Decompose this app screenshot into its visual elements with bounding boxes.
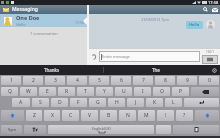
staticText: The [152,67,160,73]
button[interactable]: Send [202,55,218,64]
staticText: H [115,99,119,106]
button[interactable]: Sym [1,125,22,134]
staticText: G [96,99,100,106]
button[interactable]: H [108,98,125,107]
button[interactable]: Clipboard [173,125,219,134]
staticText: 2 [32,77,35,84]
button[interactable]: O [153,87,170,96]
button[interactable]: The [104,65,208,75]
staticText: C [69,112,73,119]
button[interactable]: Z [26,110,42,121]
staticText: Sym [8,127,16,132]
button[interactable]: 9 [177,76,197,85]
button[interactable]: S [32,98,49,107]
button[interactable]: Search [202,6,209,13]
button[interactable]: Attach [90,53,98,61]
button[interactable]: R [58,87,75,96]
button[interactable]: ? [176,110,193,121]
staticText: A [19,99,23,106]
button[interactable]: One Doe [0,14,87,27]
button[interactable]: A [12,98,30,107]
button[interactable]: U [115,87,132,96]
button[interactable]: W [20,87,37,96]
staticText: Hello [189,22,200,28]
button[interactable]: Keyboard settings [208,65,220,75]
staticText: 0 [208,77,211,84]
button[interactable]: T [77,87,94,96]
button[interactable]: 2 [23,76,43,85]
staticText: K [153,99,157,106]
staticText: One Doe [16,14,40,21]
button[interactable]: I [134,87,151,96]
staticText: Thanks [44,67,60,73]
staticText: 7 [142,77,145,84]
button[interactable]: Q [1,87,18,96]
button[interactable]: J [127,98,144,107]
button[interactable]: F [70,98,87,107]
staticText: F [77,99,80,106]
staticText: B [107,112,111,119]
staticText: Y [103,88,106,95]
staticText: 3 [54,77,57,84]
button[interactable]: New message [211,6,218,13]
staticText: W [26,88,31,95]
button[interactable]: 5 [89,76,109,85]
button[interactable]: M [138,110,155,121]
staticText: M [144,112,149,119]
staticText: 160/1 [206,50,214,54]
button[interactable]: 7 [133,76,153,85]
button[interactable]: 4 [67,76,87,85]
staticText: U [122,88,126,95]
button[interactable]: N [119,110,136,121]
button[interactable]: Emoji [156,125,171,134]
staticText: D [58,99,62,106]
button[interactable]: X [44,110,60,121]
staticText: V [88,112,92,119]
staticText: 4 [76,77,79,84]
button[interactable]: C [62,110,79,121]
button[interactable]: 6 [111,76,131,85]
staticText: English(UK) [92,126,111,131]
button[interactable]: 3 [45,76,65,85]
staticText: R [65,88,69,95]
button[interactable]: Y [96,87,113,96]
button[interactable]: B [100,110,117,121]
staticText: I [142,88,144,95]
staticText: Hello [16,22,26,27]
staticText: 1 [10,77,13,84]
button[interactable]: Voice input [24,125,46,134]
button[interactable]: E [39,87,56,96]
staticText: 9 [186,77,189,84]
staticText: Messaging [12,6,38,13]
staticText: E [46,88,49,95]
staticText: Z [33,112,36,119]
button[interactable]: 8 [155,76,175,85]
staticText: 8 [164,77,167,84]
button[interactable]: Enter message [99,51,200,62]
staticText: 6 [120,77,123,84]
button[interactable]: Hello [186,21,203,29]
button[interactable]: 0 [199,76,219,85]
staticText: 17:58 [208,0,219,5]
staticText: J [135,99,137,106]
staticText: S [39,99,42,106]
button[interactable]: Enter [184,98,219,107]
button[interactable]: P [172,87,189,96]
button[interactable]: D [51,98,68,107]
button[interactable]: ! [157,110,174,121]
button[interactable]: Shift [195,110,219,121]
button[interactable]: Thanks [0,65,103,75]
button[interactable]: 1 [1,76,21,85]
button[interactable]: L [165,98,182,107]
button[interactable]: Space [48,125,154,134]
button[interactable]: G [89,98,106,107]
staticText: T [84,88,87,95]
staticText: 5 [98,77,101,84]
button[interactable]: Messaging [0,5,87,14]
button[interactable]: Backspace [191,87,219,96]
staticText: P [179,88,183,95]
button[interactable]: K [146,98,163,107]
button[interactable]: V [81,110,98,121]
button[interactable]: Shift [1,110,24,121]
staticText: N [126,112,130,119]
